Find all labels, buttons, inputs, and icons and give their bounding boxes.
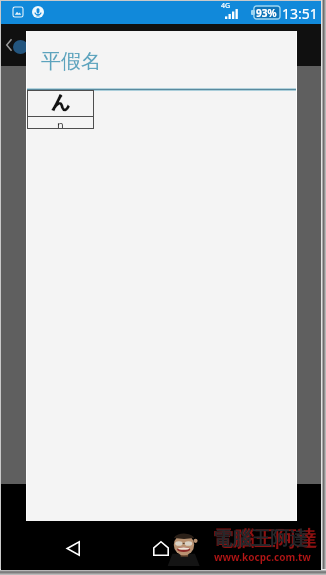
staticText: 平假名 xyxy=(41,49,101,74)
other: Screenshot xyxy=(13,7,23,17)
button[interactable]: ん xyxy=(27,90,94,129)
staticText: www.kocpc.com.tw xyxy=(214,550,311,564)
staticText: 93% xyxy=(256,6,277,19)
button[interactable]: Navigate up xyxy=(1,32,17,58)
other: Voice search xyxy=(32,6,44,18)
staticText: 電腦王阿達 xyxy=(213,527,308,551)
staticText: 13:51 xyxy=(282,4,318,23)
button[interactable]: Back xyxy=(50,533,96,563)
staticText: 電腦王阿達 xyxy=(212,526,317,552)
button[interactable]: Recent apps xyxy=(226,533,272,563)
staticText: 4G xyxy=(221,1,231,11)
staticText: ん xyxy=(51,91,71,115)
staticText: n xyxy=(57,117,64,129)
button[interactable]: Home xyxy=(138,533,184,563)
